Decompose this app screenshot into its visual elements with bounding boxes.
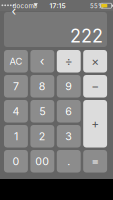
button[interactable]: ÷ — [57, 50, 81, 72]
button[interactable]: 8 — [30, 75, 54, 97]
button[interactable]: 2 — [30, 125, 54, 147]
staticText: 6 — [65, 105, 72, 118]
staticText: × — [91, 54, 99, 68]
button[interactable]: . — [57, 150, 81, 172]
staticText: ‹ — [40, 54, 45, 68]
button[interactable]: ‹ — [30, 50, 54, 72]
button[interactable]: 4 — [4, 100, 28, 122]
button[interactable]: + — [83, 100, 107, 147]
button[interactable]: 5 — [30, 100, 54, 122]
staticText: + — [91, 116, 99, 131]
button[interactable]: 00 — [30, 150, 54, 172]
button[interactable]: 7 — [4, 75, 28, 97]
staticText: ‹ — [11, 4, 16, 18]
button[interactable]: Back — [8, 5, 20, 17]
staticText: 8 — [39, 80, 46, 93]
button[interactable]: − — [83, 75, 107, 97]
staticText: 55% — [90, 2, 104, 10]
staticText: 3 — [65, 130, 72, 143]
staticText: 1 — [14, 130, 18, 143]
button[interactable]: 3 — [57, 125, 81, 147]
staticText: 5 — [39, 105, 45, 118]
staticText: 9 — [65, 80, 72, 93]
staticText: 2 — [39, 130, 46, 143]
staticText: 222 — [70, 25, 103, 47]
staticText: 17:15 — [49, 2, 65, 10]
staticText: AC — [9, 56, 22, 67]
staticText: = — [91, 154, 99, 168]
button[interactable]: AC — [4, 50, 28, 72]
staticText: . — [67, 155, 70, 168]
staticText: 7 — [13, 80, 19, 93]
staticText: 4 — [12, 105, 19, 118]
button[interactable]: = — [83, 150, 107, 172]
button[interactable]: 9 — [57, 75, 81, 97]
staticText: ÷ — [65, 54, 73, 68]
button[interactable]: 0 — [4, 150, 28, 172]
button[interactable]: 1 — [4, 125, 28, 147]
staticText: − — [91, 79, 99, 93]
button[interactable]: 6 — [57, 100, 81, 122]
staticText: 00 — [35, 155, 49, 168]
button[interactable]: × — [83, 50, 107, 72]
staticText: docomo — [12, 2, 37, 10]
staticText: 0 — [12, 155, 19, 168]
